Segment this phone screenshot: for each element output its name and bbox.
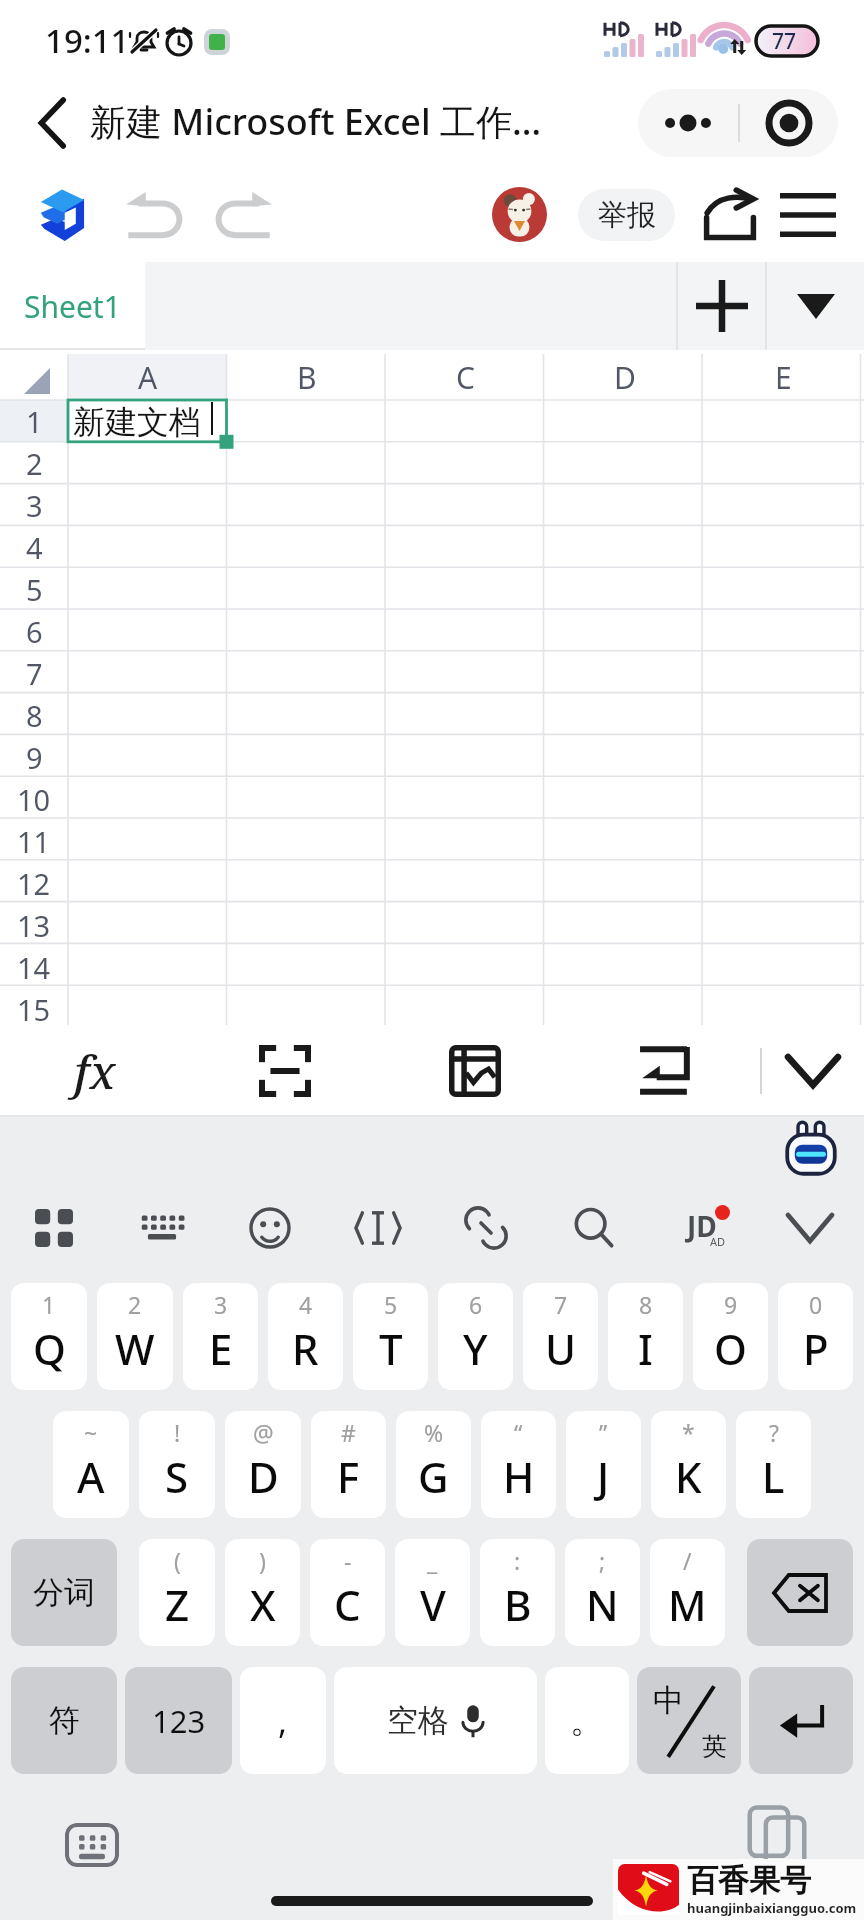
button[interactable]: Backspace — [747, 1539, 853, 1646]
button[interactable]: Collapse keyboard — [762, 1025, 864, 1117]
button[interactable]: 9 — [693, 1283, 768, 1390]
staticText: B — [297, 357, 317, 398]
button[interactable]: 8 — [0, 694, 68, 736]
button[interactable]: Search — [540, 1183, 648, 1273]
button[interactable]: - — [310, 1539, 385, 1646]
button[interactable]: A — [68, 354, 227, 400]
button[interactable]: ~ — [53, 1411, 129, 1518]
button[interactable]: , — [240, 1667, 326, 1774]
staticText: O — [714, 1320, 747, 1377]
button[interactable]: 空格 — [334, 1667, 537, 1774]
button[interactable]: Sheet1 — [0, 262, 145, 350]
button[interactable]: Clipboard — [432, 1183, 540, 1273]
staticText: K — [675, 1448, 702, 1505]
staticText: R — [292, 1320, 319, 1377]
button[interactable]: E — [704, 354, 863, 400]
button[interactable]: @ — [225, 1411, 301, 1518]
button[interactable]: Function — [0, 1025, 190, 1117]
button[interactable]: More options — [638, 89, 738, 157]
staticText: T — [379, 1320, 403, 1377]
button[interactable]: 6 — [438, 1283, 513, 1390]
button[interactable]: % — [396, 1411, 471, 1518]
button[interactable]: 符 — [11, 1667, 117, 1774]
button[interactable]: 5 — [0, 568, 68, 610]
button[interactable]: 4 — [268, 1283, 343, 1390]
button[interactable]: Redo — [210, 187, 276, 243]
staticText: 13 — [17, 906, 51, 945]
button[interactable]: 15 — [0, 988, 68, 1030]
button[interactable]: 中 — [637, 1667, 741, 1774]
button[interactable]: Cursor — [324, 1183, 432, 1273]
button[interactable]: Menu — [770, 177, 846, 253]
button[interactable]: New line — [570, 1025, 760, 1117]
button[interactable]: ( — [139, 1539, 215, 1646]
button[interactable]: 3 — [0, 484, 68, 526]
button[interactable]: Insert object — [380, 1025, 570, 1117]
button[interactable]: 1 — [11, 1283, 87, 1390]
button[interactable]: : — [480, 1539, 555, 1646]
button[interactable]: 7 — [523, 1283, 598, 1390]
button[interactable]: Apps — [0, 1183, 108, 1273]
button[interactable]: 10 — [0, 778, 68, 820]
button[interactable]: 分词 — [11, 1539, 117, 1646]
button[interactable]: 12 — [0, 862, 68, 904]
button[interactable]: Assistant — [784, 1120, 838, 1176]
button[interactable]: 新建文档 — [68, 400, 227, 442]
button[interactable]: 2 — [97, 1283, 173, 1390]
button[interactable]: Hide keyboard — [65, 1823, 119, 1867]
button[interactable]: 2 — [0, 442, 68, 484]
button[interactable]: Add sheet — [678, 262, 765, 350]
staticText: 0 — [809, 1289, 823, 1320]
button[interactable]: D — [545, 354, 704, 400]
button[interactable]: 4 — [0, 526, 68, 568]
button[interactable]: 0 — [778, 1283, 853, 1390]
staticText: 新建 Microsoft Excel 工作… — [90, 97, 542, 146]
button[interactable]: ” — [566, 1411, 641, 1518]
staticText: % — [424, 1417, 444, 1448]
button[interactable]: C — [386, 354, 545, 400]
button[interactable]: Sheet list — [767, 262, 864, 350]
staticText: 77 — [772, 27, 797, 56]
button[interactable]: 6 — [0, 610, 68, 652]
button[interactable]: * — [651, 1411, 726, 1518]
button[interactable]: ) — [225, 1539, 300, 1646]
staticText: N — [586, 1576, 619, 1633]
button[interactable]: 123 — [125, 1667, 232, 1774]
button[interactable]: / — [650, 1539, 725, 1646]
button[interactable]: Record — [740, 89, 838, 157]
button[interactable]: # — [311, 1411, 386, 1518]
button[interactable]: 3 — [183, 1283, 258, 1390]
button[interactable]: “ — [481, 1411, 556, 1518]
button[interactable]: Emoji — [216, 1183, 324, 1273]
button[interactable]: ! — [139, 1411, 215, 1518]
button[interactable]: 举报 — [578, 189, 675, 241]
button[interactable]: Profile — [492, 187, 547, 242]
staticText: fx — [74, 1040, 116, 1103]
button[interactable]: B — [227, 354, 386, 400]
button[interactable]: Clipboard — [746, 1805, 808, 1867]
button[interactable]: 。 — [545, 1667, 629, 1774]
staticText: S — [165, 1448, 189, 1505]
button[interactable]: 1 — [0, 400, 68, 442]
button[interactable]: JD — [648, 1183, 756, 1273]
button[interactable]: Keyboard layout — [108, 1183, 216, 1273]
button[interactable]: ? — [736, 1411, 811, 1518]
button[interactable]: App menu — [39, 188, 85, 242]
button[interactable]: Hide keyboard — [756, 1183, 864, 1273]
button[interactable]: Back — [14, 90, 80, 156]
button[interactable]: _ — [395, 1539, 470, 1646]
button[interactable]: Scan — [190, 1025, 380, 1117]
button[interactable]: 11 — [0, 820, 68, 862]
button[interactable]: 14 — [0, 946, 68, 988]
button[interactable]: 7 — [0, 652, 68, 694]
button[interactable]: Undo — [122, 187, 188, 243]
button[interactable]: 8 — [608, 1283, 683, 1390]
button[interactable]: Share — [692, 177, 768, 253]
button[interactable]: ; — [565, 1539, 640, 1646]
staticText: 4 — [26, 528, 43, 567]
staticText: 19:11 — [45, 18, 130, 63]
button[interactable]: 5 — [353, 1283, 428, 1390]
button[interactable]: 9 — [0, 736, 68, 778]
button[interactable]: 13 — [0, 904, 68, 946]
button[interactable]: Enter — [749, 1667, 853, 1774]
